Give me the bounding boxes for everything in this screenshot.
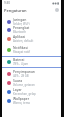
staticText: Bluetooth	[13, 30, 26, 34]
button[interactable]: Layar	[2, 87, 61, 96]
staticText: Warna, tema	[13, 101, 30, 105]
button[interactable]: Aplikasi	[2, 34, 61, 43]
button[interactable]: Perangkat	[2, 25, 61, 34]
staticText: Perangkat	[13, 25, 30, 30]
staticText: Penyimpanan	[13, 69, 35, 74]
staticText: Jaringan	[13, 17, 27, 22]
button[interactable]: Notifikasi	[2, 45, 61, 54]
button[interactable]: Wallpaper	[2, 96, 61, 105]
staticText: Seluler, Wi-Fi	[13, 22, 30, 26]
staticText: Kecerahan, gelap	[13, 92, 36, 96]
staticText: Suara	[13, 78, 23, 83]
staticText: Wallpaper	[13, 96, 30, 101]
staticText: 9:30	[4, 1, 10, 5]
button[interactable]: Jaringan	[2, 17, 61, 26]
staticText: 78% - 4 jam	[13, 62, 29, 66]
staticText: Aplikasi	[13, 34, 26, 39]
button[interactable]: Search	[55, 8, 59, 12]
staticText: Baterai	[13, 57, 25, 62]
staticText: Notifikasi	[13, 45, 28, 50]
button[interactable]: Penyimpanan	[2, 69, 61, 78]
staticText: 44% - 28 GB	[13, 74, 29, 78]
staticText: Pengaturan	[4, 8, 27, 13]
button[interactable]: Suara	[2, 78, 61, 87]
staticText: Layar	[13, 87, 22, 92]
staticText: Asisten, default	[13, 39, 34, 43]
staticText: Volume, getaran	[13, 83, 35, 87]
button[interactable]: Baterai	[2, 57, 61, 66]
staticText: Riwayat notif	[13, 50, 31, 54]
